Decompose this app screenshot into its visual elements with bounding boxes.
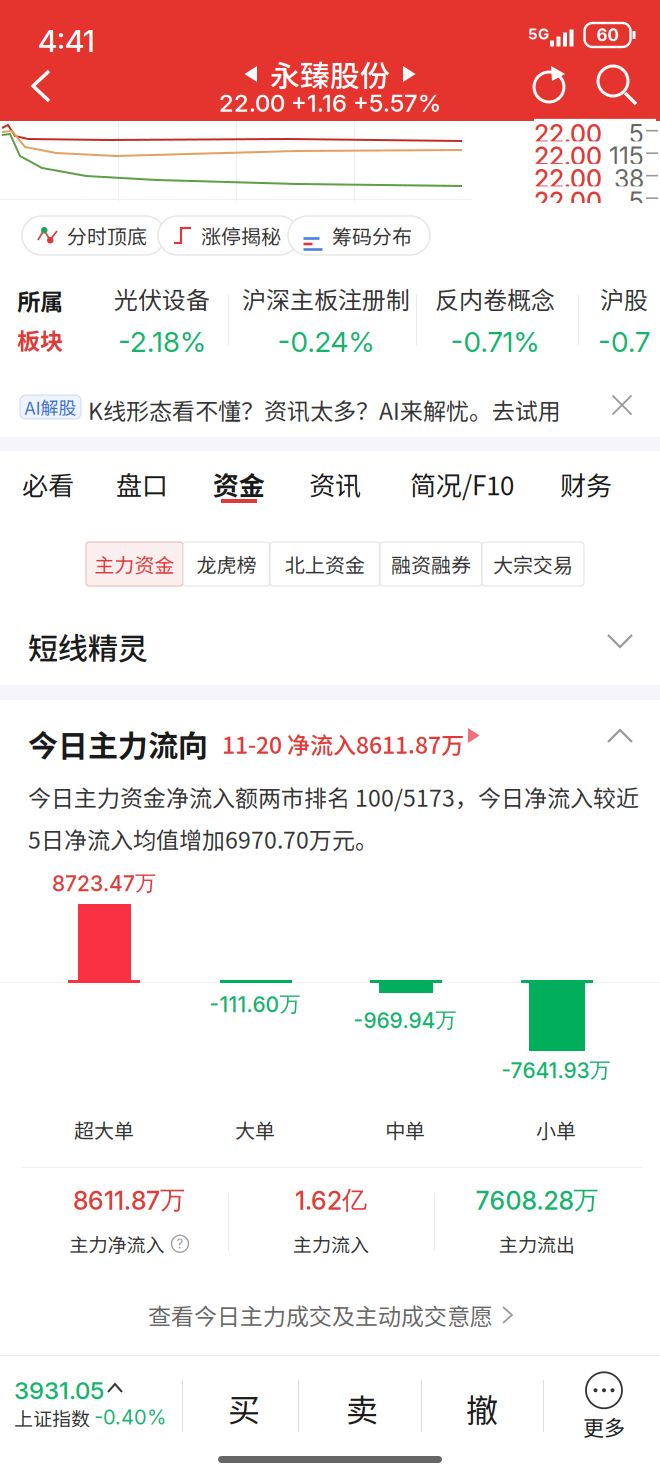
button[interactable]: 筹码分布 (288, 216, 430, 255)
staticText: 盘口 (116, 465, 168, 503)
staticText: 主力资金 (94, 549, 174, 578)
staticText: -0.40% (94, 1405, 166, 1429)
staticText: 38 (614, 164, 644, 194)
staticText: 沪深主板注册制 (242, 281, 410, 316)
button[interactable]: 反内卷概念 (420, 268, 570, 372)
button[interactable]: 3931.05 (14, 1376, 180, 1446)
button[interactable]: Back (3, 54, 79, 118)
button[interactable]: Refresh (518, 54, 582, 118)
staticText: 必看 (22, 465, 74, 503)
staticText: ? (176, 1236, 183, 1252)
button[interactable]: 沪股 (588, 268, 660, 372)
staticText: 小单 (536, 1115, 576, 1144)
staticText: 沪股 (600, 281, 648, 316)
button[interactable]: 涨停揭秘 (158, 216, 299, 255)
staticText: 大宗交易 (493, 549, 573, 578)
staticText: 8723.47万 (52, 870, 156, 896)
staticText: 财务 (560, 465, 612, 503)
staticText: -2.18% (118, 325, 206, 359)
button[interactable]: 查看今日主力成交及主动成交意愿 (0, 1275, 660, 1355)
staticText: K线形态看不懂？资讯太多？AI来解忧。去试用 (88, 393, 561, 426)
staticText: 撤 (466, 1385, 498, 1431)
staticText: 所属 (17, 284, 63, 317)
staticText: 7608.28万 (475, 1184, 598, 1216)
staticText: 反内卷概念 (435, 281, 555, 316)
staticText: 5日净流入均值增加6970.70万元。 (28, 822, 378, 855)
staticText: 22.00 +1.16 +5.57% (219, 88, 441, 117)
staticText: -111.60万 (209, 991, 300, 1017)
staticText: 今日主力流向 (28, 722, 208, 765)
button[interactable]: 简况/F10 (400, 451, 524, 522)
staticText: 22.00 (534, 164, 602, 194)
button[interactable]: Search (586, 54, 650, 118)
staticText: 11-20 净流入8611.87万 (222, 727, 464, 760)
staticText: 超大单 (74, 1115, 134, 1144)
staticText: 筹码分布 (332, 221, 412, 250)
button[interactable]: 光伏设备 (100, 268, 224, 372)
button[interactable]: 融资融券 (380, 542, 482, 586)
staticText: 资讯 (309, 465, 361, 503)
button[interactable]: 盘口 (112, 451, 172, 522)
staticText: AI解股 (24, 394, 76, 420)
staticText: 北上资金 (285, 549, 365, 578)
staticText: 主力流入 (293, 1230, 369, 1257)
staticText: 板块 (17, 323, 63, 356)
staticText: 资金 (213, 465, 265, 503)
staticText: 115 (609, 141, 644, 172)
button[interactable]: 短线精灵 (0, 600, 660, 685)
staticText: 5 (629, 186, 644, 217)
staticText: -0.71% (450, 325, 539, 359)
staticText: 22.00 (534, 119, 602, 149)
staticText: 8611.87万 (73, 1184, 185, 1216)
staticText: -0.24% (277, 325, 374, 359)
button[interactable]: 必看 (18, 451, 78, 522)
staticText: 短线精灵 (28, 625, 148, 668)
staticText: 查看今日主力成交及主动成交意愿 (148, 1298, 493, 1332)
staticText: 大单 (235, 1115, 275, 1144)
staticText: -969.94万 (353, 1007, 456, 1033)
staticText: 22.00 (534, 186, 602, 217)
staticText: 中单 (385, 1115, 425, 1144)
button[interactable]: 分时顶底 (22, 216, 165, 255)
button[interactable]: 大宗交易 (482, 542, 584, 586)
button[interactable]: 资金 (209, 451, 269, 522)
staticText: 光伏设备 (114, 281, 210, 316)
button[interactable]: 卖 (310, 1363, 414, 1453)
button[interactable]: 撤 (430, 1363, 534, 1453)
button[interactable]: 北上资金 (270, 542, 380, 586)
staticText: 主力净流入 (69, 1230, 164, 1257)
button[interactable]: 财务 (556, 451, 616, 522)
staticText: 主力流出 (499, 1230, 575, 1257)
staticText: -7641.93万 (501, 1057, 610, 1083)
staticText: 更多 (583, 1411, 625, 1442)
staticText: 4:41 (38, 23, 95, 59)
button[interactable]: 龙虎榜 (183, 542, 270, 586)
staticText: 22.00 (534, 141, 602, 172)
staticText: 龙虎榜 (196, 549, 256, 578)
button[interactable]: 沪深主板注册制 (231, 268, 421, 372)
staticText: 分时顶底 (67, 221, 147, 250)
button[interactable]: 更多 (554, 1371, 654, 1443)
staticText: 涨停揭秘 (201, 221, 281, 250)
staticText: 3931.05 (14, 1376, 104, 1405)
staticText: -0.7 (598, 325, 650, 359)
staticText: 买 (228, 1385, 260, 1431)
button[interactable]: 资讯 (305, 451, 365, 522)
staticText: 简况/F10 (410, 465, 514, 503)
staticText: 卖 (346, 1385, 378, 1431)
button[interactable]: Collapse (596, 712, 644, 760)
staticText: 1.62亿 (295, 1184, 367, 1216)
staticText: 上证指数 (14, 1404, 90, 1431)
staticText: 今日主力资金净流入额两市排名 100/5173，今日净流入较近 (28, 780, 639, 813)
staticText: 60 (596, 25, 618, 45)
staticText: 5 (629, 119, 644, 149)
button[interactable]: 买 (192, 1363, 296, 1453)
button[interactable]: 主力资金 (86, 542, 183, 586)
staticText: 融资融券 (391, 549, 471, 578)
button[interactable]: Close (600, 383, 644, 427)
staticText: 5G (528, 25, 549, 43)
staticText: 永臻股份 (270, 52, 390, 96)
